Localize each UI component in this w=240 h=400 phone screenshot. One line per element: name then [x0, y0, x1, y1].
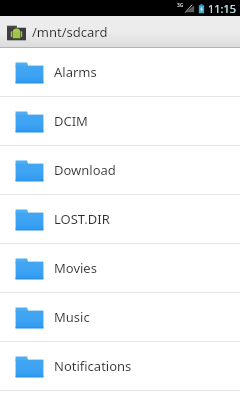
- staticText: 3G: [177, 2, 184, 9]
- staticText: Notifications: [54, 357, 132, 375]
- staticText: /mnt/sdcard: [32, 23, 108, 41]
- staticText: DCIM: [54, 112, 88, 130]
- staticText: Download: [54, 161, 116, 179]
- staticText: LOST.DIR: [54, 210, 110, 228]
- button[interactable]: Download: [0, 146, 240, 194]
- button[interactable]: Notifications: [0, 342, 240, 390]
- button[interactable]: App icon: [0, 16, 240, 47]
- button[interactable]: Music: [0, 293, 240, 341]
- staticText: Music: [54, 308, 90, 326]
- staticText: 11:15: [208, 1, 237, 16]
- button[interactable]: Movies: [0, 244, 240, 292]
- button[interactable]: DCIM: [0, 97, 240, 145]
- button[interactable]: LOST.DIR: [0, 195, 240, 243]
- button[interactable]: Alarms: [0, 48, 240, 96]
- staticText: Movies: [54, 259, 97, 277]
- staticText: Alarms: [54, 63, 97, 81]
- other: App icon: [7, 24, 26, 41]
